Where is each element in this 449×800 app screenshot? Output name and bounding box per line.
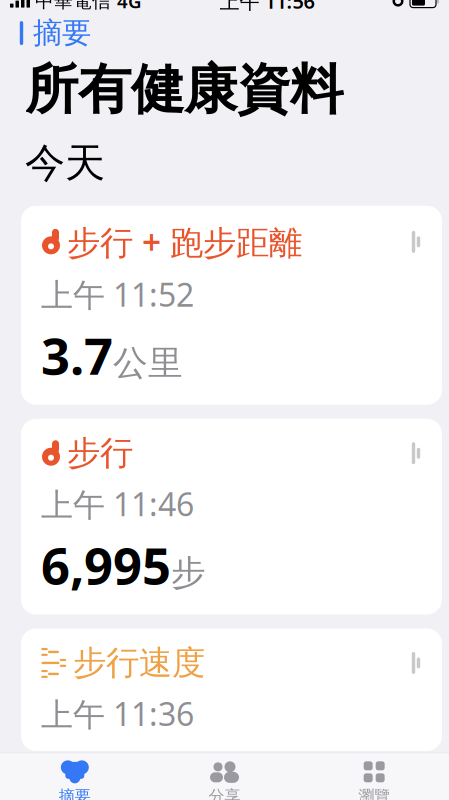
staticText: 摘要 [59,786,91,800]
staticText: 4G [117,0,142,13]
button[interactable]: 步行 + 跑步距離 [21,206,442,405]
button[interactable]: 摘要 [0,753,150,800]
button[interactable]: 步行 [21,419,442,614]
staticText: 步 [171,552,206,594]
button[interactable]: 分享 [150,753,299,800]
button[interactable]: 返回摘要 [0,11,91,55]
staticText: 公里 [113,342,183,384]
staticText: 6,995 [41,531,171,598]
staticText: 上午 11:36 [41,692,194,735]
staticText: 今天 [25,139,105,188]
staticText: 步行 [67,433,133,474]
staticText: 步行速度 [73,642,205,683]
staticText: 上午 11:46 [41,483,194,525]
button[interactable]: 瀏覽 [299,753,449,800]
staticText: 3.7 [41,321,113,389]
staticText: 步行 + 跑步距離 [67,220,302,264]
staticText: 中華電信 [35,0,111,12]
staticText: 摘要 [33,15,91,51]
staticText: 所有健康資料 [25,57,343,123]
staticText: 分享 [208,786,240,800]
button[interactable]: 步行速度 [21,628,442,751]
staticText: 上午 11:52 [41,273,194,315]
staticText: 上午 11:56 [219,0,314,14]
staticText: 瀏覽 [358,786,390,800]
